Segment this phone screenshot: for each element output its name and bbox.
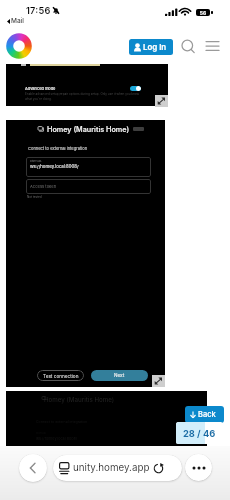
staticText: ws://homey.local:8008/	[30, 164, 79, 169]
staticText: ws://homey.local:8008/	[36, 436, 78, 440]
staticText: Enable advanced setup/repair options dur…	[25, 92, 140, 96]
staticText: Advanced mode	[25, 86, 56, 91]
button[interactable]: Menu	[203, 38, 221, 54]
staticText: Homey (Mauritis Home)	[47, 125, 130, 134]
staticText: Connect to external integration	[36, 420, 88, 424]
button[interactable]: unity.homey.app	[53, 455, 182, 481]
staticText: Mail	[11, 17, 24, 25]
staticText: Driver URL	[30, 160, 42, 163]
button[interactable]: Homey home	[6, 33, 32, 59]
button[interactable]: Test connection	[37, 370, 84, 381]
button[interactable]: Expand image	[152, 375, 165, 387]
button[interactable]: Access token	[26, 179, 151, 194]
button[interactable]: 28 / 46	[176, 422, 223, 444]
staticText: Next	[114, 373, 125, 379]
staticText: Test connection	[43, 373, 79, 379]
staticText: Homey (Mauritis Home)	[44, 396, 115, 404]
staticText: Not tested	[27, 195, 42, 199]
staticText: unity.homey.app	[73, 462, 150, 474]
button[interactable]: Advanced mode toggle	[130, 86, 141, 91]
button[interactable]: More	[185, 454, 212, 481]
button[interactable]: Driver URL	[26, 157, 151, 177]
staticText: 56	[196, 10, 210, 16]
staticText: Log In	[143, 42, 167, 52]
button[interactable]: Back	[185, 406, 224, 423]
button[interactable]: Expand image	[155, 95, 168, 107]
staticText: Back	[198, 410, 216, 419]
button[interactable]: Back	[19, 454, 47, 482]
staticText: 28 / 46	[183, 428, 216, 439]
staticText: Connect to external integration	[28, 146, 88, 151]
staticText: Access token	[30, 184, 57, 189]
staticText: what you're doing.	[25, 97, 52, 101]
button[interactable]: Mail	[7, 17, 24, 25]
button[interactable]: Next	[91, 370, 148, 381]
button[interactable]: Log In	[129, 39, 173, 55]
staticText: 17:56	[26, 5, 51, 16]
button[interactable]: Search	[179, 38, 196, 54]
